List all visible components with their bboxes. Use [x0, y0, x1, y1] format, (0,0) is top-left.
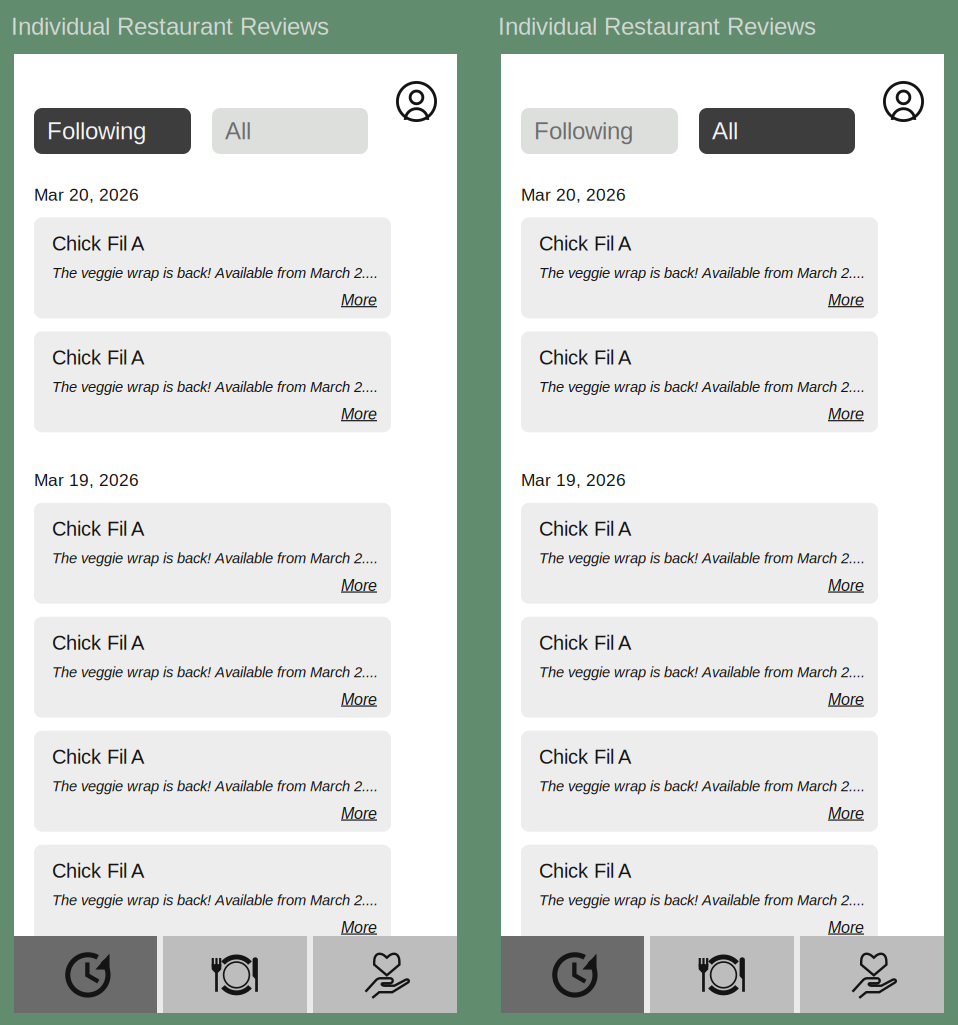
staticText: Chick Fil A	[52, 860, 144, 882]
staticText: Chick Fil A	[539, 746, 631, 768]
staticText: Mar 19, 2026	[521, 470, 626, 490]
staticText: Following	[47, 118, 146, 144]
button[interactable]: Restaurants	[163, 936, 307, 1013]
staticText: Mar 20, 2026	[521, 185, 626, 204]
button[interactable]: All	[699, 108, 855, 154]
button[interactable]: More	[828, 918, 864, 936]
staticText: Chick Fil A	[52, 746, 144, 768]
staticText: More	[828, 405, 864, 423]
button[interactable]: More	[828, 690, 864, 708]
staticText: More	[341, 405, 377, 423]
staticText: More	[828, 291, 864, 309]
staticText: Chick Fil A	[52, 232, 144, 255]
staticText: More	[341, 918, 377, 936]
staticText: More	[828, 576, 864, 594]
button[interactable]: Following	[34, 108, 191, 154]
button[interactable]: More	[828, 405, 864, 423]
button[interactable]: More	[341, 690, 377, 708]
button[interactable]: More	[828, 804, 864, 822]
button[interactable]: Favorites	[313, 936, 457, 1013]
button[interactable]: More	[828, 291, 864, 309]
button[interactable]: More	[341, 918, 377, 936]
staticText: The veggie wrap is back! Available from …	[52, 379, 378, 395]
button[interactable]: More	[341, 291, 377, 309]
staticText: The veggie wrap is back! Available from …	[52, 550, 378, 566]
staticText: Mar 19, 2026	[34, 470, 139, 490]
button[interactable]: Recent	[14, 936, 157, 1013]
staticText: Chick Fil A	[539, 346, 631, 369]
button[interactable]: More	[828, 576, 864, 594]
staticText: Chick Fil A	[539, 632, 631, 654]
staticText: Chick Fil A	[539, 860, 631, 882]
button[interactable]: Favorites	[800, 936, 944, 1013]
staticText: More	[828, 804, 864, 822]
staticText: Individual Restaurant Reviews	[11, 13, 329, 40]
staticText: Mar 20, 2026	[34, 185, 139, 204]
staticText: The veggie wrap is back! Available from …	[52, 892, 378, 908]
staticText: Following	[534, 118, 633, 144]
staticText: More	[341, 576, 377, 594]
staticText: The veggie wrap is back! Available from …	[539, 265, 865, 281]
button[interactable]: Following	[521, 108, 678, 154]
staticText: The veggie wrap is back! Available from …	[52, 664, 378, 680]
staticText: The veggie wrap is back! Available from …	[52, 778, 378, 794]
staticText: More	[341, 690, 377, 708]
button[interactable]: All	[212, 108, 368, 154]
button[interactable]: Profile	[883, 81, 924, 122]
staticText: The veggie wrap is back! Available from …	[52, 265, 378, 281]
button[interactable]: More	[341, 576, 377, 594]
staticText: The veggie wrap is back! Available from …	[539, 664, 865, 680]
staticText: More	[341, 804, 377, 822]
staticText: More	[341, 291, 377, 309]
button[interactable]: More	[341, 804, 377, 822]
button[interactable]: Restaurants	[650, 936, 794, 1013]
staticText: Chick Fil A	[52, 518, 144, 540]
staticText: The veggie wrap is back! Available from …	[539, 892, 865, 908]
staticText: The veggie wrap is back! Available from …	[539, 778, 865, 794]
staticText: All	[225, 118, 251, 144]
staticText: Chick Fil A	[52, 346, 144, 369]
staticText: Chick Fil A	[539, 518, 631, 540]
button[interactable]: More	[341, 405, 377, 423]
button[interactable]: Recent	[501, 936, 644, 1013]
staticText: Individual Restaurant Reviews	[498, 13, 816, 40]
staticText: Chick Fil A	[52, 632, 144, 654]
staticText: Chick Fil A	[539, 232, 631, 255]
staticText: The veggie wrap is back! Available from …	[539, 379, 865, 395]
staticText: More	[828, 690, 864, 708]
staticText: More	[828, 918, 864, 936]
button[interactable]: Profile	[396, 81, 437, 122]
staticText: The veggie wrap is back! Available from …	[539, 550, 865, 566]
staticText: All	[712, 118, 738, 144]
